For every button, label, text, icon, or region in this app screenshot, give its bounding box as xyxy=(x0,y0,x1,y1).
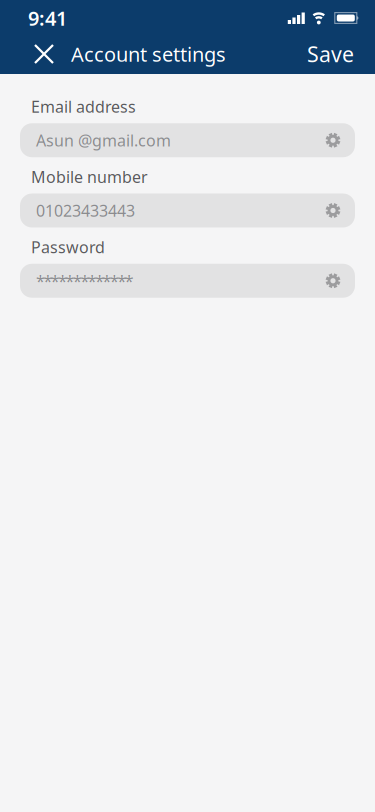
button[interactable]: Password settings xyxy=(325,273,355,289)
button[interactable]: Mobile number xyxy=(0,193,375,227)
staticText: Password xyxy=(31,236,105,258)
button[interactable]: Email address xyxy=(0,123,375,157)
button[interactable]: Close xyxy=(0,45,71,63)
staticText: ************* xyxy=(36,270,134,291)
button[interactable]: Save xyxy=(307,40,375,68)
staticText: Save xyxy=(307,40,354,68)
staticText: Asun @gmail.com xyxy=(36,130,171,151)
staticText: 01023433443 xyxy=(36,200,135,221)
button[interactable]: Email address settings xyxy=(325,132,355,148)
staticText: Email address xyxy=(31,96,136,117)
staticText: 9:41 xyxy=(28,5,67,31)
button[interactable]: Password xyxy=(0,264,375,298)
staticText: Mobile number xyxy=(31,166,148,187)
button[interactable]: Mobile number settings xyxy=(325,202,355,218)
staticText: Account settings xyxy=(71,41,226,67)
